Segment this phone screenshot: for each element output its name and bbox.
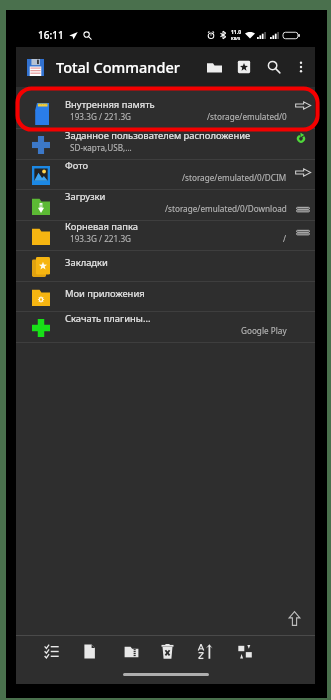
staticText: /storage/emulated/0/DCIM — [182, 172, 287, 183]
staticText: Корневая папка — [65, 220, 138, 233]
button[interactable]: Мои приложения — [16, 282, 315, 312]
staticText: Total Commander — [56, 57, 180, 77]
button[interactable]: Внутренняя память — [16, 99, 315, 129]
staticText: Скачать плагины... — [65, 312, 151, 325]
staticText: Закладки — [65, 256, 108, 269]
staticText: SD-карта,USB,... — [70, 142, 132, 153]
button[interactable]: More options — [289, 55, 313, 79]
staticText: Заданное пользователем расположение — [65, 129, 251, 142]
button[interactable]: Select — [40, 640, 63, 663]
staticText: 11.0 — [231, 29, 241, 36]
staticText: Загрузки — [65, 190, 106, 203]
button[interactable]: Bookmarks — [229, 52, 259, 82]
button[interactable]: Заданное пользователем расположение — [16, 129, 315, 160]
button[interactable]: Загрузки — [16, 190, 315, 221]
button[interactable]: Swap panels — [234, 640, 257, 663]
staticText: KB/S — [231, 36, 241, 41]
button[interactable]: New folder — [120, 640, 143, 663]
staticText: / — [283, 233, 287, 244]
button[interactable]: Open folder — [199, 52, 229, 82]
button[interactable]: New file — [78, 640, 101, 663]
button[interactable]: Search — [259, 52, 289, 82]
staticText: Внутренняя память — [65, 98, 155, 111]
staticText: /storage/emulated/0/Download — [165, 203, 287, 214]
button[interactable]: Скачать плагины... — [16, 312, 315, 343]
button[interactable]: Total Commander — [20, 52, 50, 82]
staticText: Мои приложения — [65, 287, 145, 300]
button[interactable]: Закладки — [16, 251, 315, 282]
button[interactable]: Sort — [194, 640, 217, 663]
button[interactable]: Delete — [156, 640, 179, 663]
button[interactable]: Фото — [16, 160, 315, 190]
staticText: 193.3G / 221.3G — [70, 111, 132, 122]
staticText: /storage/emulated/0 — [207, 111, 287, 122]
staticText: Фото — [65, 159, 89, 172]
staticText: Google Play — [241, 325, 287, 336]
staticText: 16:11 — [38, 28, 64, 42]
staticText: 193.3G / 221.3G — [70, 233, 132, 244]
button[interactable]: Up one level — [281, 605, 307, 631]
button[interactable]: Корневая папка — [16, 221, 315, 251]
